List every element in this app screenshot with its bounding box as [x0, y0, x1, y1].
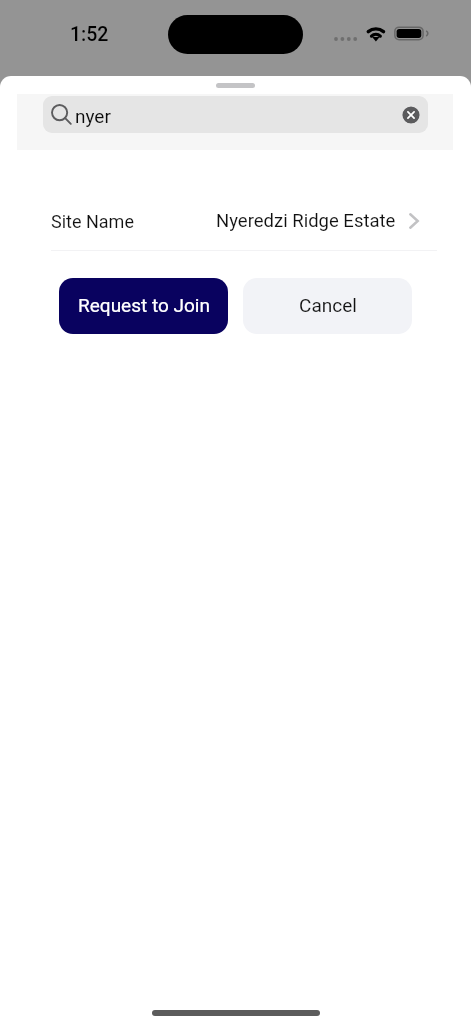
button[interactable]: Request to Join	[59, 278, 228, 334]
button[interactable]: Clear search	[402, 106, 420, 124]
staticText: nyer	[75, 105, 111, 127]
staticText: Cancel	[299, 294, 357, 316]
staticText: Request to Join	[78, 294, 210, 316]
button[interactable]: Site Name	[51, 203, 419, 239]
staticText: Nyeredzi Ridge Estate	[216, 210, 396, 232]
button[interactable]: nyer	[43, 96, 428, 133]
staticText: 1:52	[70, 23, 109, 46]
staticText: Site Name	[51, 211, 134, 232]
button[interactable]: Cancel	[243, 278, 412, 334]
